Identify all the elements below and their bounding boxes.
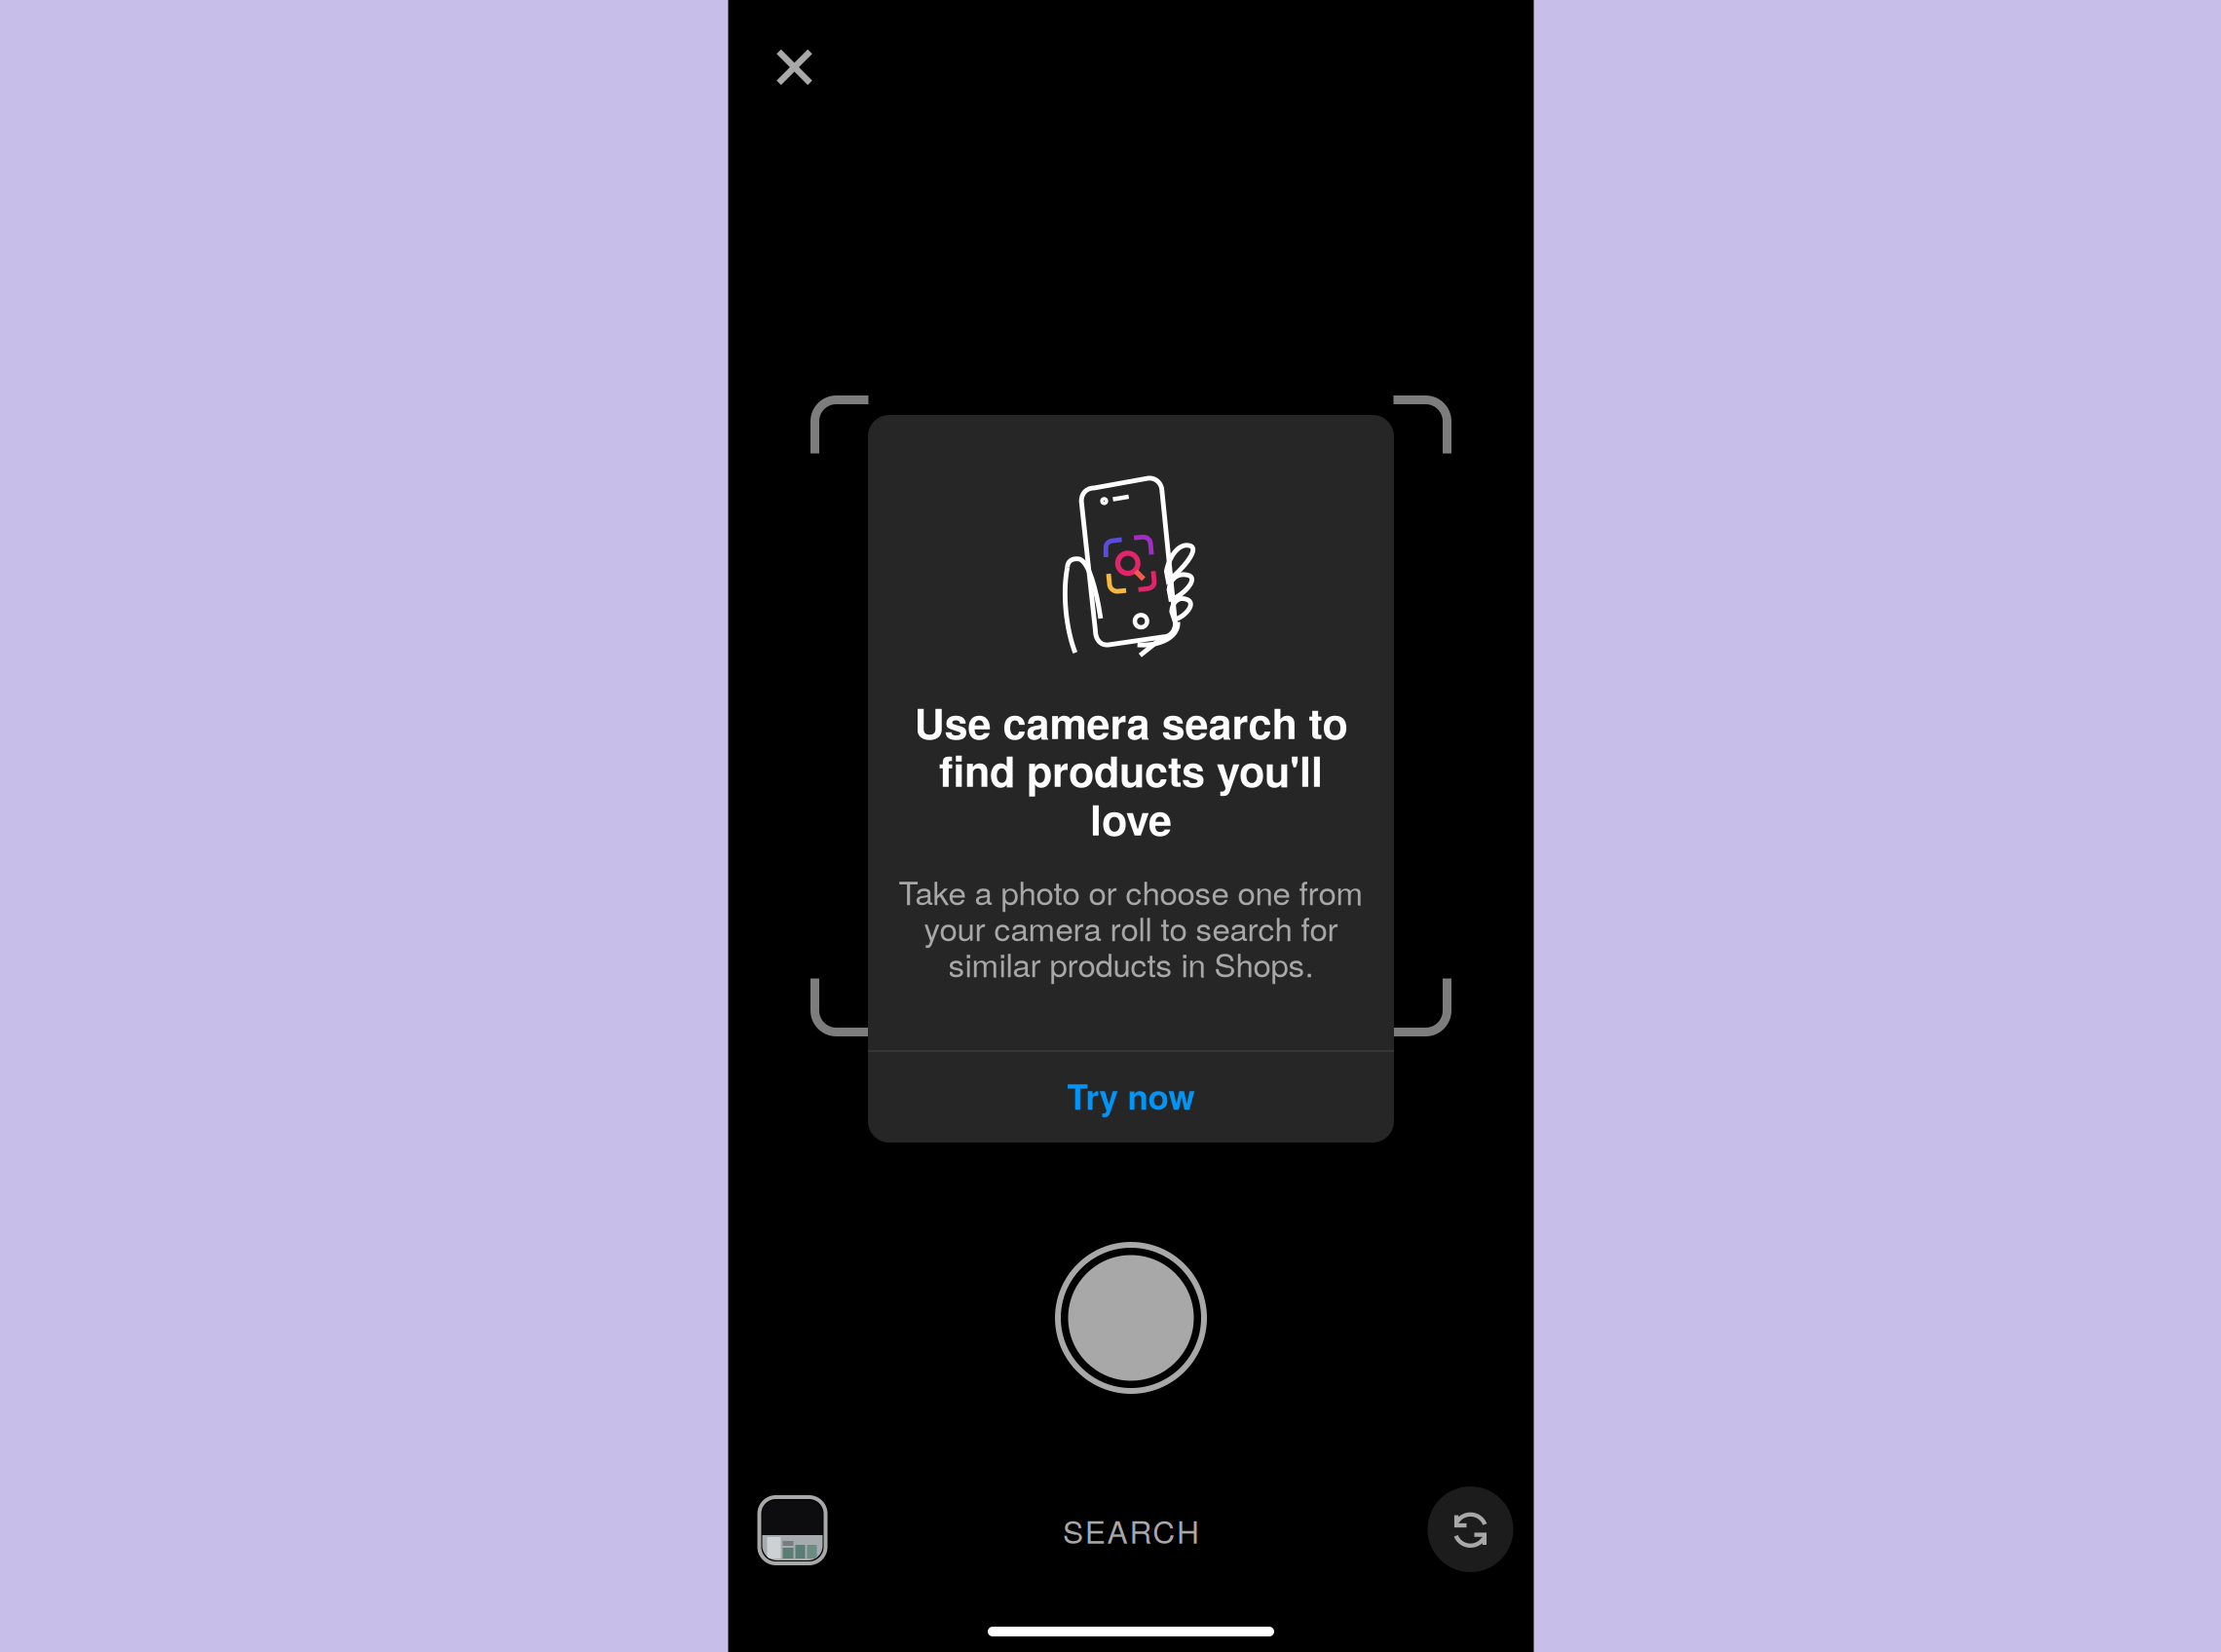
- staticText: find products you'll: [939, 739, 1323, 800]
- staticText: similar products in Shops.: [948, 940, 1314, 986]
- button[interactable]: Shutter: [1048, 1235, 1214, 1401]
- staticText: love: [1090, 788, 1172, 848]
- staticText: Try now: [1067, 1071, 1195, 1120]
- staticText: Take a photo or choose one from: [899, 868, 1363, 914]
- button[interactable]: Try now: [868, 1049, 1394, 1143]
- button[interactable]: SEARCH: [1004, 1496, 1258, 1564]
- staticText: your camera roll to search for: [924, 904, 1338, 950]
- button[interactable]: Flip camera: [1420, 1479, 1521, 1580]
- button[interactable]: Close: [757, 30, 831, 104]
- button[interactable]: Camera roll: [748, 1485, 837, 1575]
- staticText: SEARCH: [1063, 1508, 1199, 1552]
- staticText: Use camera search to: [914, 692, 1348, 752]
